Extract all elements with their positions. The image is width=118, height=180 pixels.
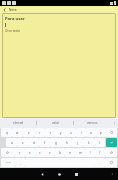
staticText: u [70,131,72,135]
staticText: f [44,141,46,145]
staticText: w [16,131,19,135]
button[interactable]: Recents [72,170,81,179]
button[interactable]: i [76,128,86,137]
button[interactable]: , [15,158,25,167]
button[interactable]: t [45,128,56,137]
button[interactable]: u [66,128,76,137]
staticText: Nota [9,8,17,12]
button[interactable]: q [1,128,12,137]
button[interactable]: Back [3,8,7,12]
button[interactable]: d [28,138,39,147]
button[interactable]: p [96,128,106,137]
staticText: o [90,131,92,135]
button[interactable]: Symbols [1,158,15,167]
button[interactable]: y [56,128,66,137]
staticText: g [55,141,57,145]
staticText: Otro texto [5,29,21,33]
staticText: ? [99,151,101,155]
staticText: l [99,141,100,145]
button[interactable]: Backspace [106,128,117,137]
staticText: various [87,121,98,125]
button[interactable]: Home [55,170,64,179]
button[interactable]: r [34,128,45,137]
button[interactable]: b [55,148,65,157]
button[interactable]: ? [95,148,105,157]
button[interactable]: h [61,138,72,147]
staticText: b [59,151,61,155]
staticText: k [88,141,90,145]
button[interactable]: o [86,128,96,137]
staticText: y [60,131,62,135]
button[interactable]: Emoji [105,158,117,167]
staticText: ?123 [6,161,11,164]
button[interactable]: a [6,138,17,147]
button[interactable]: e [23,128,34,137]
button[interactable]: various [74,118,110,128]
staticText: i [81,131,82,135]
button[interactable]: n [65,148,75,157]
button[interactable]: Hide keyboard [109,171,115,177]
button[interactable]: s [17,138,28,147]
button[interactable]: z [14,148,25,157]
staticText: z [19,151,21,155]
staticText: e [28,131,30,135]
button[interactable]: valid [37,118,73,128]
staticText: n [69,151,71,155]
staticText: valid [52,121,59,125]
button[interactable]: l [94,138,105,147]
staticText: m [79,151,82,155]
staticText: elected [13,121,24,125]
button[interactable]: m [75,148,85,157]
button[interactable]: Para usar [2,13,116,118]
button[interactable]: f [39,138,50,147]
staticText: c [39,151,41,155]
button[interactable]: x [25,148,35,157]
button[interactable]: elected [0,118,36,128]
staticText: , [20,161,21,165]
staticText: v [49,151,51,155]
button[interactable]: More suggestions [110,118,118,128]
button[interactable]: g [50,138,61,147]
button[interactable]: j [72,138,83,147]
staticText: a [11,141,13,145]
staticText: . [99,161,100,165]
button[interactable]: ! [85,148,95,157]
button[interactable]: Enter [106,138,117,147]
staticText: Para usar [5,16,25,22]
button[interactable]: Back [38,170,47,179]
staticText: r [39,131,41,135]
staticText: q [6,131,8,135]
button[interactable]: v [45,148,55,157]
button[interactable]: Shift right [105,148,117,157]
button[interactable]: c [35,148,45,157]
staticText: x [29,151,31,155]
staticText: t [50,131,52,135]
button[interactable]: k [83,138,94,147]
button[interactable]: Shift [1,148,14,157]
staticText: d [33,141,35,145]
staticText: ! [90,151,91,155]
button[interactable]: . [94,158,105,167]
staticText: j [77,141,78,145]
button[interactable]: w [12,128,23,137]
staticText: p [100,131,102,135]
staticText: h [66,141,68,145]
staticText: s [22,141,24,145]
